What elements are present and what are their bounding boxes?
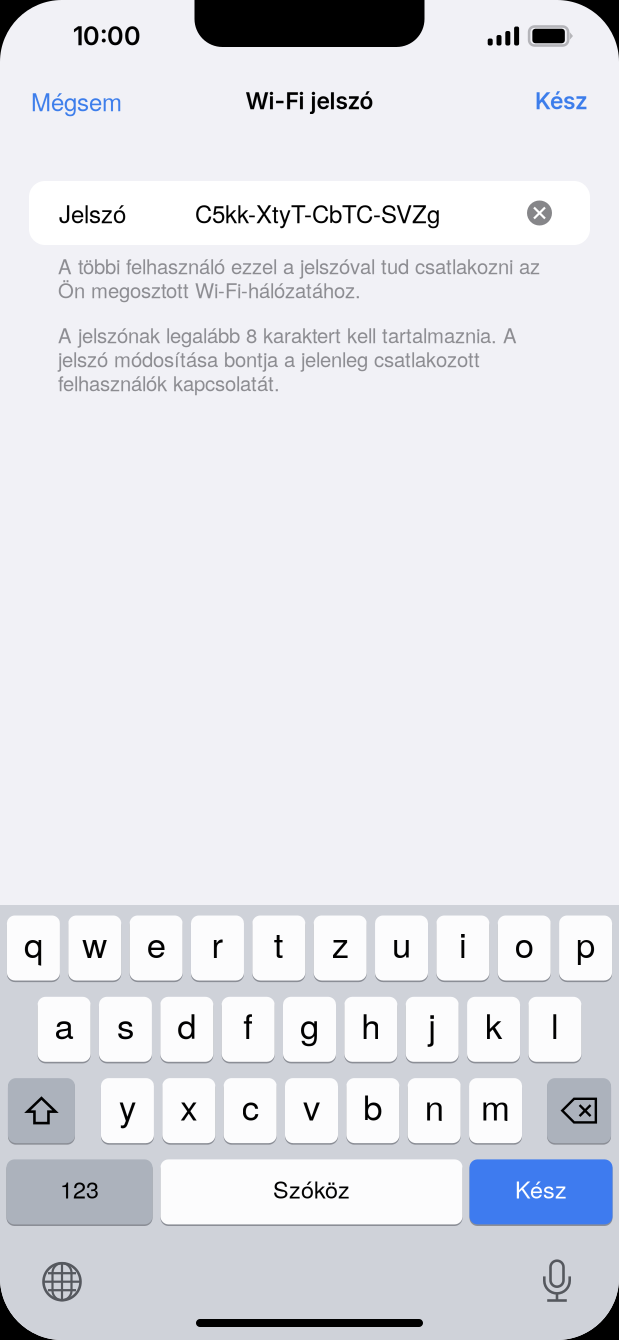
staticText: 10:00	[73, 21, 141, 51]
button[interactable]: Mégsem	[17, 72, 136, 130]
staticText: Jelszó	[59, 196, 126, 230]
staticText: a	[55, 999, 74, 1049]
staticText: j	[428, 999, 436, 1049]
button[interactable]: v	[285, 1078, 338, 1143]
staticText: s	[117, 999, 134, 1049]
staticText: g	[300, 999, 319, 1049]
button[interactable]: Shift	[8, 1078, 75, 1143]
button[interactable]: e	[130, 915, 183, 980]
button[interactable]: Delete	[547, 1078, 611, 1143]
button[interactable]: k	[467, 997, 520, 1062]
button[interactable]: d	[160, 997, 213, 1062]
staticText: jelszó módosítása bontja a jelenleg csat…	[58, 344, 480, 373]
staticText: u	[392, 918, 411, 968]
staticText: Kész	[515, 1172, 567, 1205]
button[interactable]: n	[408, 1078, 461, 1143]
button[interactable]: m	[469, 1078, 522, 1143]
button[interactable]: z	[314, 915, 367, 980]
button[interactable]: y	[101, 1078, 154, 1143]
staticText: v	[303, 1081, 320, 1130]
button[interactable]: p	[559, 915, 612, 980]
button[interactable]: s	[99, 997, 152, 1062]
staticText: A többi felhasználó ezzel a jelszóval tu…	[58, 251, 540, 280]
staticText: c	[242, 1081, 259, 1130]
button[interactable]: Next keyboard	[39, 1259, 85, 1305]
staticText: d	[177, 999, 196, 1049]
staticText: n	[425, 1081, 444, 1130]
staticText: b	[363, 1081, 382, 1130]
staticText: q	[24, 918, 43, 968]
button[interactable]: r	[191, 915, 244, 980]
button[interactable]: c	[224, 1078, 277, 1143]
staticText: A jelszónak legalább 8 karaktert kell ta…	[58, 320, 517, 349]
staticText: f	[243, 999, 253, 1049]
staticText: C5kk-XtyT-CbTC-SVZg	[195, 196, 440, 230]
button[interactable]: u	[375, 915, 428, 980]
button[interactable]: t	[252, 915, 305, 980]
button[interactable]: l	[528, 997, 581, 1062]
button[interactable]: i	[436, 915, 489, 980]
button[interactable]: Kész	[521, 75, 602, 127]
staticText: Ön megosztott Wi-Fi-hálózatához.	[58, 275, 361, 304]
button[interactable]: w	[68, 915, 121, 980]
staticText: Mégsem	[31, 84, 122, 118]
staticText: o	[515, 918, 534, 968]
button[interactable]: q	[7, 915, 60, 980]
staticText: l	[551, 999, 559, 1049]
staticText: w	[82, 918, 107, 968]
button[interactable]: Szóköz	[160, 1159, 462, 1224]
button[interactable]: f	[222, 997, 275, 1062]
button[interactable]: o	[498, 915, 551, 980]
staticText: Kész	[535, 87, 588, 115]
staticText: 123	[60, 1172, 99, 1205]
button[interactable]: a	[38, 997, 91, 1062]
button[interactable]: j	[406, 997, 459, 1062]
staticText: h	[361, 999, 380, 1049]
button[interactable]: 123	[6, 1159, 152, 1224]
staticText: r	[211, 918, 223, 968]
staticText: m	[481, 1081, 510, 1130]
staticText: k	[485, 999, 502, 1049]
staticText: e	[147, 918, 166, 968]
button[interactable]: Dictate	[534, 1257, 580, 1307]
staticText: Wi-Fi jelszó	[245, 87, 373, 115]
button[interactable]: h	[344, 997, 397, 1062]
staticText: y	[119, 1081, 136, 1130]
staticText: Szóköz	[273, 1172, 350, 1205]
button[interactable]: x	[162, 1078, 215, 1143]
staticText: p	[576, 918, 595, 968]
button[interactable]: Kész	[469, 1159, 612, 1224]
staticText: i	[459, 918, 467, 968]
staticText: t	[274, 918, 284, 968]
button[interactable]: b	[346, 1078, 399, 1143]
button[interactable]: g	[283, 997, 336, 1062]
staticText: x	[180, 1081, 197, 1130]
staticText: felhasználók kapcsolatát.	[58, 368, 280, 397]
button[interactable]: Clear text	[527, 200, 552, 225]
staticText: z	[332, 918, 349, 968]
